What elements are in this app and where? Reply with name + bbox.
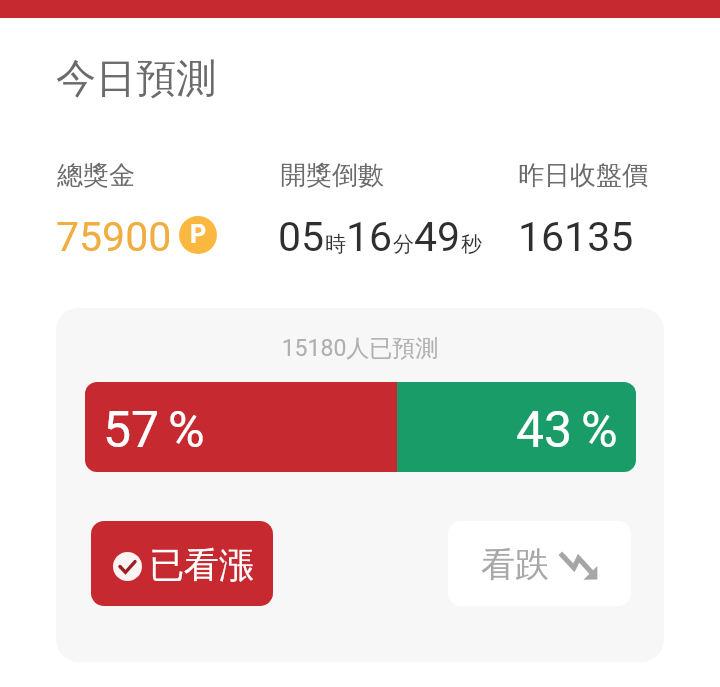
staticText: 15180人已預測 xyxy=(56,334,664,363)
staticText: 75900 xyxy=(56,213,172,261)
staticText: 05 xyxy=(278,213,325,261)
button[interactable]: 看跌 xyxy=(448,521,631,606)
staticText: % xyxy=(581,401,618,460)
button[interactable]: 已看漲 xyxy=(91,521,273,606)
staticText: 49 xyxy=(414,213,461,261)
staticText: 時 xyxy=(325,231,346,257)
staticText: 57 xyxy=(103,401,160,460)
staticText: 看跌 xyxy=(481,543,549,586)
staticText: 總獎金 xyxy=(57,159,135,192)
staticText: % xyxy=(168,401,205,460)
other: Trending down xyxy=(557,551,598,580)
staticText: 16 xyxy=(346,213,393,261)
staticText: 分 xyxy=(393,231,414,257)
staticText: 秒 xyxy=(461,231,482,257)
staticText: P xyxy=(190,220,207,249)
staticText: 昨日收盤價 xyxy=(518,159,648,192)
staticText: 已看漲 xyxy=(149,543,254,587)
staticText: 43 xyxy=(516,401,573,460)
staticText: 開獎倒數 xyxy=(280,159,384,192)
staticText: 今日預測 xyxy=(56,53,216,103)
staticText: 16135 xyxy=(518,213,634,261)
